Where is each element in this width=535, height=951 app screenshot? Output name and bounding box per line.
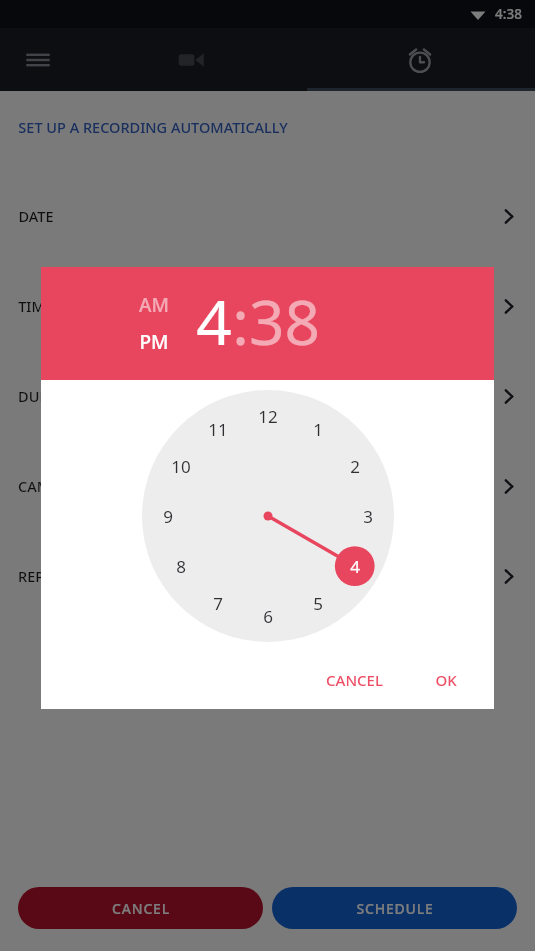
button[interactable]: 7 [200,585,236,621]
staticText: SCHEDULE [356,899,434,918]
staticText: CAMERA [18,476,77,496]
button[interactable]: AM [139,290,169,320]
staticText: PM [139,329,169,355]
button[interactable]: 8 [163,548,199,584]
button[interactable]: PM [139,327,169,357]
staticText: 11 [208,418,228,441]
button[interactable]: 2 [337,448,373,484]
staticText: 4 [350,555,360,578]
button[interactable]: 5 [300,585,336,621]
button[interactable]: 38 [249,279,320,363]
button[interactable]: 4 [337,548,373,584]
button[interactable]: 10 [163,448,199,484]
staticText: 38 [249,279,320,363]
button[interactable]: CANCEL [315,661,394,699]
staticText: AM [139,292,169,318]
button[interactable]: DATE [0,171,535,261]
button[interactable]: 4 [196,279,232,363]
button[interactable]: SCHEDULE [272,887,517,929]
staticText: CANCEL [112,899,170,918]
button[interactable]: CANCEL [18,887,263,929]
button[interactable]: 3 [350,498,386,534]
button[interactable]: OK [424,661,468,699]
button[interactable]: CAMERA [0,441,535,531]
button[interactable]: TIME [0,261,535,351]
staticText: 9 [163,505,173,528]
staticText: 1 [313,418,323,441]
button[interactable]: 6 [250,598,286,634]
staticText: CANCEL [326,670,383,690]
staticText: SET UP A RECORDING AUTOMATICALLY [18,117,288,137]
staticText: TIME [18,296,53,316]
staticText: 5 [313,592,323,615]
staticText: DATE [18,206,54,226]
staticText: 6 [263,605,273,628]
staticText: DURATION [18,386,93,406]
staticText: 3 [363,505,373,528]
staticText: : [232,279,249,363]
staticText: 10 [171,455,191,478]
staticText: 12 [258,405,278,428]
staticText: 8 [176,555,186,578]
staticText: 7 [213,592,223,615]
staticText: 2 [350,455,360,478]
button[interactable]: DURATION [0,351,535,441]
staticText: OK [435,670,457,690]
button[interactable]: 1 [300,411,336,447]
staticText: 4 [196,279,232,363]
staticText: REPEAT [18,566,69,586]
button[interactable]: REPEAT [0,531,535,621]
staticText: 4:38 [495,5,522,23]
button[interactable]: Schedule [305,28,535,91]
button[interactable]: 12 [250,398,286,434]
button[interactable]: 9 [150,498,186,534]
button[interactable]: 11 [200,411,236,447]
button[interactable]: Open navigation menu [0,28,76,91]
